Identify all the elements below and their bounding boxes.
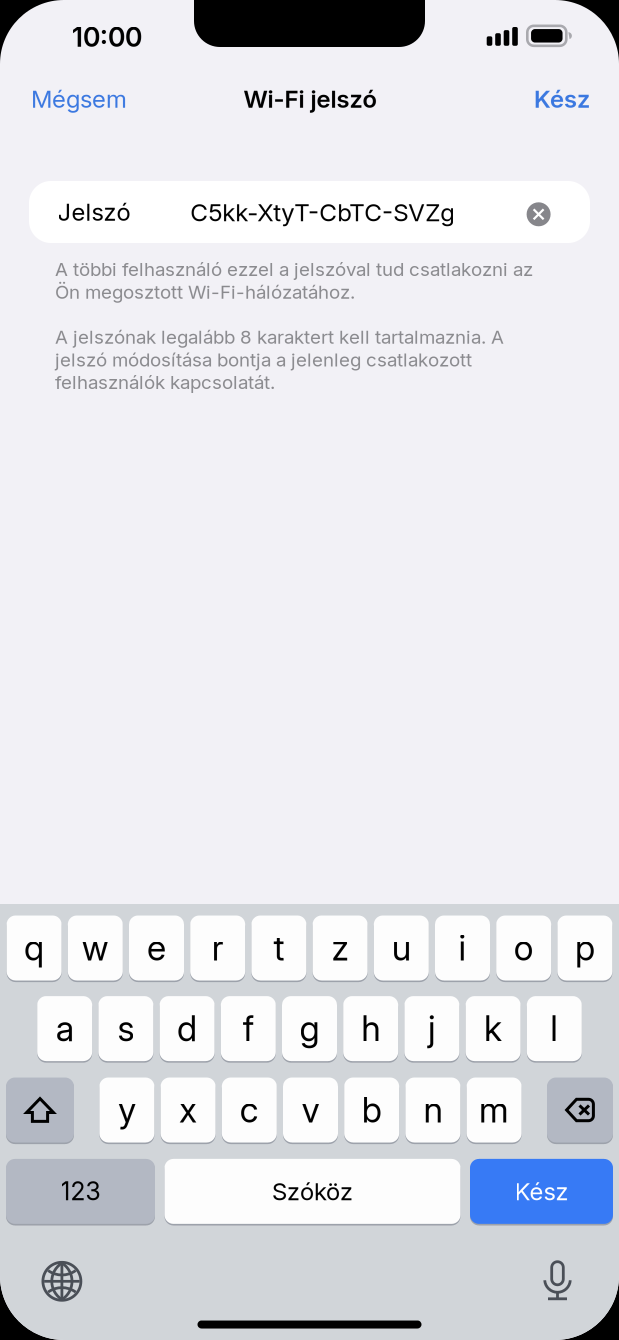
staticText: Kész [514, 1177, 568, 1206]
button[interactable]: Mégsem [0, 71, 181, 127]
button[interactable]: i [435, 913, 490, 982]
staticText: x [179, 1089, 197, 1131]
staticText: Kész [534, 84, 590, 113]
staticText: Wi-Fi jelszó [243, 84, 376, 113]
button[interactable]: d [160, 994, 215, 1063]
staticText: Mégsem [31, 84, 127, 113]
staticText: r [212, 927, 224, 969]
staticText: d [177, 1008, 197, 1049]
staticText: n [423, 1089, 442, 1131]
button[interactable]: Szóköz [164, 1157, 460, 1226]
staticText: 10:00 [72, 21, 142, 53]
button[interactable]: 123 [6, 1157, 155, 1226]
button[interactable]: h [343, 994, 398, 1063]
staticText: y [118, 1089, 136, 1131]
button[interactable]: Delete [547, 1075, 613, 1144]
button[interactable]: t [251, 913, 306, 982]
staticText: C5kk-XtyT-CbTC-SVZg [190, 198, 455, 227]
staticText: z [332, 927, 349, 969]
button[interactable]: r [190, 913, 245, 982]
button[interactable]: a [37, 994, 92, 1063]
button[interactable]: q [7, 913, 62, 982]
staticText: b [362, 1089, 382, 1131]
staticText: e [147, 927, 166, 969]
button[interactable]: m [467, 1075, 522, 1144]
staticText: t [273, 927, 284, 969]
staticText: j [428, 1008, 436, 1049]
button[interactable]: e [129, 913, 184, 982]
staticText: h [361, 1008, 380, 1049]
button[interactable]: Shift [6, 1075, 74, 1144]
staticText: l [550, 1008, 558, 1049]
button[interactable]: o [496, 913, 551, 982]
staticText: v [301, 1089, 319, 1131]
button[interactable]: v [283, 1075, 338, 1144]
button[interactable]: Dictation [526, 1250, 588, 1312]
button[interactable]: Next keyboard [31, 1250, 93, 1312]
button[interactable]: Kész [470, 1157, 613, 1226]
staticText: Jelszó [57, 197, 130, 226]
staticText: g [299, 1008, 319, 1049]
staticText: p [575, 927, 595, 969]
button[interactable]: Kész [470, 71, 619, 127]
button[interactable]: s [98, 994, 153, 1063]
staticText: o [514, 927, 534, 969]
button[interactable]: Clear text [514, 185, 564, 243]
staticText: u [392, 927, 411, 969]
staticText: a [56, 1008, 74, 1049]
staticText: q [24, 927, 44, 969]
staticText: i [458, 927, 466, 969]
button[interactable]: l [527, 994, 582, 1063]
staticText: w [82, 927, 109, 969]
button[interactable]: z [313, 913, 368, 982]
button[interactable]: g [282, 994, 337, 1063]
staticText: 123 [60, 1176, 100, 1206]
button[interactable]: j [404, 994, 459, 1063]
staticText: Szóköz [272, 1177, 353, 1206]
staticText: k [484, 1008, 502, 1049]
button[interactable]: f [221, 994, 276, 1063]
staticText: m [479, 1089, 509, 1131]
button[interactable]: c [222, 1075, 277, 1144]
staticText: f [243, 1008, 254, 1049]
button[interactable]: w [68, 913, 123, 982]
staticText: A jelszónak legalább 8 karaktert kell ta… [55, 326, 504, 394]
staticText: A többi felhasználó ezzel a jelszóval tu… [55, 258, 533, 303]
staticText: c [240, 1089, 259, 1131]
button[interactable]: x [161, 1075, 216, 1144]
button[interactable]: b [344, 1075, 399, 1144]
button[interactable]: k [466, 994, 521, 1063]
button[interactable]: p [557, 913, 612, 982]
staticText: s [117, 1008, 134, 1049]
button[interactable]: n [405, 1075, 460, 1144]
button[interactable]: u [374, 913, 429, 982]
button[interactable]: y [99, 1075, 154, 1144]
